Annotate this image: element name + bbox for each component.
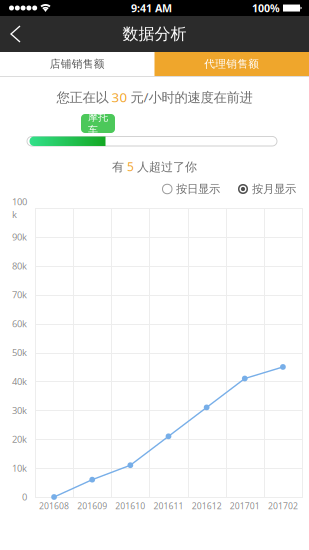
staticText: 100% xyxy=(252,1,280,15)
staticText: 您正在以 30 元/小时的速度在前进 xyxy=(56,88,252,106)
staticText: 店铺销售额 xyxy=(50,57,105,71)
button[interactable]: 店铺销售额 xyxy=(0,52,154,76)
button[interactable]: 按月显示 xyxy=(238,182,296,196)
staticText: 按月显示 xyxy=(252,182,296,196)
button[interactable]: 代理销售额 xyxy=(154,52,309,76)
staticText: 201702 xyxy=(268,500,298,512)
staticText: 70k xyxy=(12,288,27,301)
staticText: 有 5 人超过了你 xyxy=(112,158,197,175)
staticText: 代理销售额 xyxy=(204,57,259,71)
staticText: 80k xyxy=(12,259,27,272)
staticText: 0 xyxy=(22,491,27,503)
staticText: 20k xyxy=(12,433,27,445)
staticText: 9:41 AM xyxy=(131,1,172,15)
staticText: 201611 xyxy=(153,500,183,512)
staticText: 50k xyxy=(12,346,27,359)
staticText: 30k xyxy=(12,404,27,417)
button[interactable]: Back xyxy=(0,16,34,52)
staticText: 40k xyxy=(12,375,27,388)
staticText: 按日显示 xyxy=(176,182,220,196)
staticText: 201609 xyxy=(77,500,107,512)
staticText: 10k xyxy=(12,462,27,474)
staticText: 100k xyxy=(12,195,27,221)
staticText: 201610 xyxy=(115,500,145,512)
button[interactable]: 按日显示 xyxy=(162,182,220,196)
staticText: 60k xyxy=(12,317,27,330)
staticText: 数据分析 xyxy=(122,24,186,44)
staticText: 201608 xyxy=(39,500,69,512)
staticText: 201612 xyxy=(192,500,222,512)
staticText: 201701 xyxy=(230,500,260,512)
staticText: 摩托车 xyxy=(88,111,108,136)
staticText: 90k xyxy=(12,230,27,243)
